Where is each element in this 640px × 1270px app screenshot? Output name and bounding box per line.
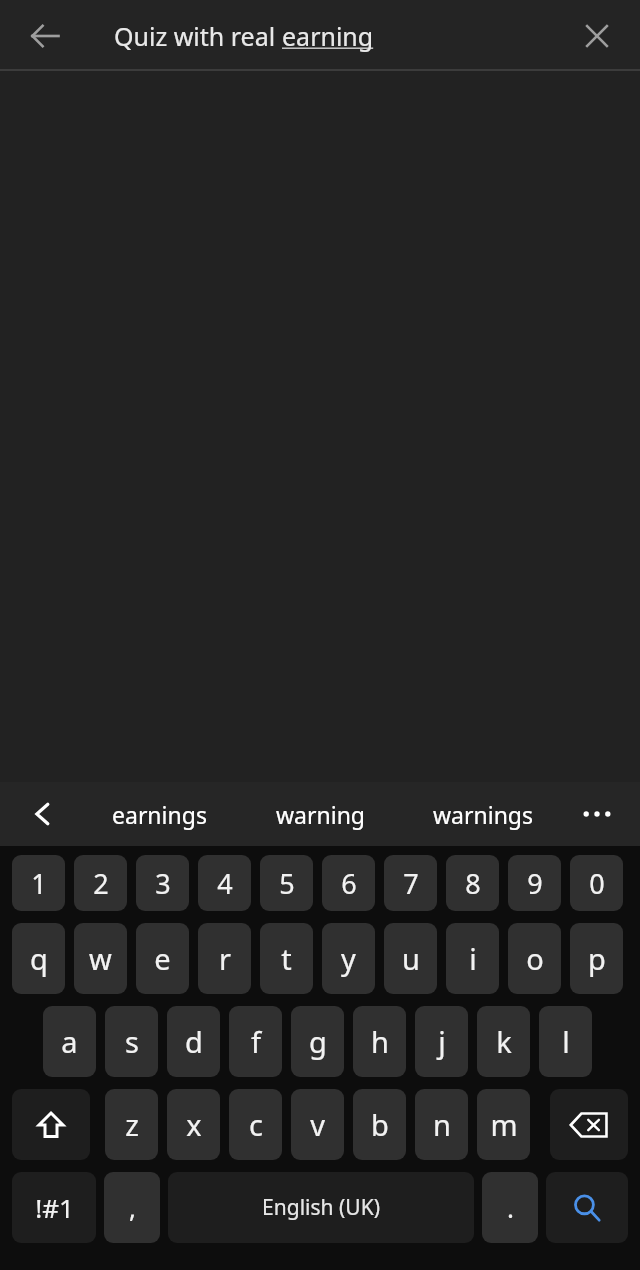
button[interactable]: j [415, 1006, 468, 1077]
button[interactable]: 8 [446, 855, 499, 911]
staticText: b [371, 1105, 389, 1144]
button[interactable]: p [570, 923, 623, 994]
staticText: l [562, 1022, 570, 1061]
button[interactable]: z [105, 1089, 158, 1160]
button[interactable]: . [482, 1172, 538, 1243]
button[interactable]: w [74, 923, 127, 994]
staticText: 4 [217, 865, 233, 902]
staticText: 0 [589, 865, 605, 902]
button[interactable]: y [322, 923, 375, 994]
staticText: earnings [112, 799, 207, 830]
button[interactable]: f [229, 1006, 282, 1077]
button[interactable]: Back [14, 0, 76, 71]
staticText: earning [282, 19, 374, 53]
button[interactable]: o [508, 923, 561, 994]
button[interactable]: 4 [198, 855, 251, 911]
staticText: n [433, 1105, 451, 1144]
staticText: y [341, 939, 356, 978]
button[interactable]: d [167, 1006, 220, 1077]
button[interactable]: a [43, 1006, 96, 1077]
button[interactable]: g [291, 1006, 344, 1077]
staticText: i [469, 939, 477, 978]
other: Backspace [570, 1112, 608, 1138]
button[interactable]: l [539, 1006, 592, 1077]
staticText: 1 [31, 865, 47, 902]
button[interactable]: !#1 [12, 1172, 96, 1243]
staticText: !#1 [35, 1190, 74, 1225]
button[interactable]: Close [566, 0, 628, 71]
button[interactable]: u [384, 923, 437, 994]
staticText: h [371, 1022, 389, 1061]
staticText: q [30, 939, 48, 978]
staticText: Quiz with real [114, 19, 282, 53]
staticText: . [507, 1190, 514, 1225]
button[interactable]: 9 [508, 855, 561, 911]
button[interactable]: 7 [384, 855, 437, 911]
staticText: 7 [403, 865, 419, 902]
staticText: , [129, 1190, 136, 1225]
staticText: 5 [279, 865, 295, 902]
staticText: warnings [433, 799, 534, 830]
staticText: e [154, 939, 171, 978]
button[interactable]: s [105, 1006, 158, 1077]
button[interactable]: , [104, 1172, 160, 1243]
staticText: English (UK) [262, 1193, 380, 1222]
button[interactable]: 0 [570, 855, 623, 911]
button[interactable]: i [446, 923, 499, 994]
staticText: 9 [527, 865, 543, 902]
button[interactable]: v [291, 1089, 344, 1160]
button[interactable]: n [415, 1089, 468, 1160]
button[interactable]: r [198, 923, 251, 994]
button[interactable]: m [477, 1089, 530, 1160]
staticText: x [186, 1105, 202, 1144]
button[interactable]: c [229, 1089, 282, 1160]
button[interactable]: e [136, 923, 189, 994]
button[interactable]: More suggestions [566, 782, 628, 846]
staticText: r [219, 939, 231, 978]
staticText: v [310, 1105, 325, 1144]
staticText: p [588, 939, 606, 978]
staticText: d [185, 1022, 203, 1061]
button[interactable]: Search [546, 1172, 628, 1243]
other: Shift [36, 1110, 66, 1140]
staticText: z [125, 1105, 139, 1144]
staticText: c [249, 1105, 263, 1144]
staticText: f [251, 1022, 261, 1061]
button[interactable]: 6 [322, 855, 375, 911]
staticText: t [281, 939, 292, 978]
staticText: 2 [93, 865, 109, 902]
button[interactable]: warnings [410, 782, 556, 846]
staticText: m [490, 1105, 518, 1144]
staticText: k [496, 1022, 512, 1061]
button[interactable]: x [167, 1089, 220, 1160]
button[interactable]: q [12, 923, 65, 994]
button[interactable]: Backspace [550, 1089, 628, 1160]
button[interactable]: warning [252, 782, 388, 846]
staticText: 3 [155, 865, 171, 902]
button[interactable]: t [260, 923, 313, 994]
staticText: w [89, 939, 112, 978]
staticText: a [61, 1022, 78, 1061]
button[interactable]: k [477, 1006, 530, 1077]
staticText: j [438, 1022, 446, 1061]
button[interactable]: 1 [12, 855, 65, 911]
button[interactable]: Shift [12, 1089, 90, 1160]
staticText: o [526, 939, 544, 978]
staticText: g [309, 1022, 327, 1061]
staticText: u [402, 939, 420, 978]
staticText: 6 [341, 865, 357, 902]
button[interactable]: Previous suggestions [10, 782, 76, 846]
button[interactable]: 3 [136, 855, 189, 911]
button[interactable]: 2 [74, 855, 127, 911]
button[interactable]: English (UK) [168, 1172, 474, 1243]
button[interactable]: h [353, 1006, 406, 1077]
staticText: warning [276, 799, 365, 830]
button[interactable]: earnings [84, 782, 234, 846]
staticText: s [125, 1022, 139, 1061]
other: Search [571, 1192, 603, 1224]
button[interactable]: 5 [260, 855, 313, 911]
staticText: 8 [465, 865, 481, 902]
button[interactable]: b [353, 1089, 406, 1160]
